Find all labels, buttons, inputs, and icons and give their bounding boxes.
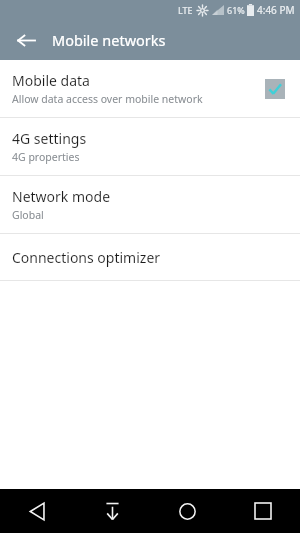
- button[interactable]: Recents: [225, 489, 300, 533]
- button[interactable]: 4G settings: [0, 118, 300, 175]
- staticText: Mobile data: [12, 71, 90, 90]
- staticText: LTE: [178, 4, 193, 16]
- button[interactable]: Home: [150, 489, 225, 533]
- staticText: Connections optimizer: [12, 248, 161, 267]
- staticText: Network mode: [12, 187, 111, 206]
- button[interactable]: Mobile data: [0, 60, 300, 117]
- staticText: Mobile networks: [52, 30, 166, 50]
- button[interactable]: Connections optimizer: [0, 234, 300, 280]
- button[interactable]: Back: [10, 24, 42, 56]
- button[interactable]: Mobile data toggle: [264, 78, 286, 100]
- staticText: Global: [12, 208, 44, 222]
- staticText: 4G properties: [12, 150, 80, 164]
- button[interactable]: Hide keyboard: [75, 489, 150, 533]
- staticText: 4G settings: [12, 129, 87, 148]
- staticText: Allow data access over mobile network: [12, 92, 203, 106]
- staticText: 61%: [227, 4, 245, 16]
- staticText: 4:46 PM: [257, 3, 295, 17]
- button[interactable]: Back: [0, 489, 75, 533]
- button[interactable]: Network mode: [0, 176, 300, 233]
